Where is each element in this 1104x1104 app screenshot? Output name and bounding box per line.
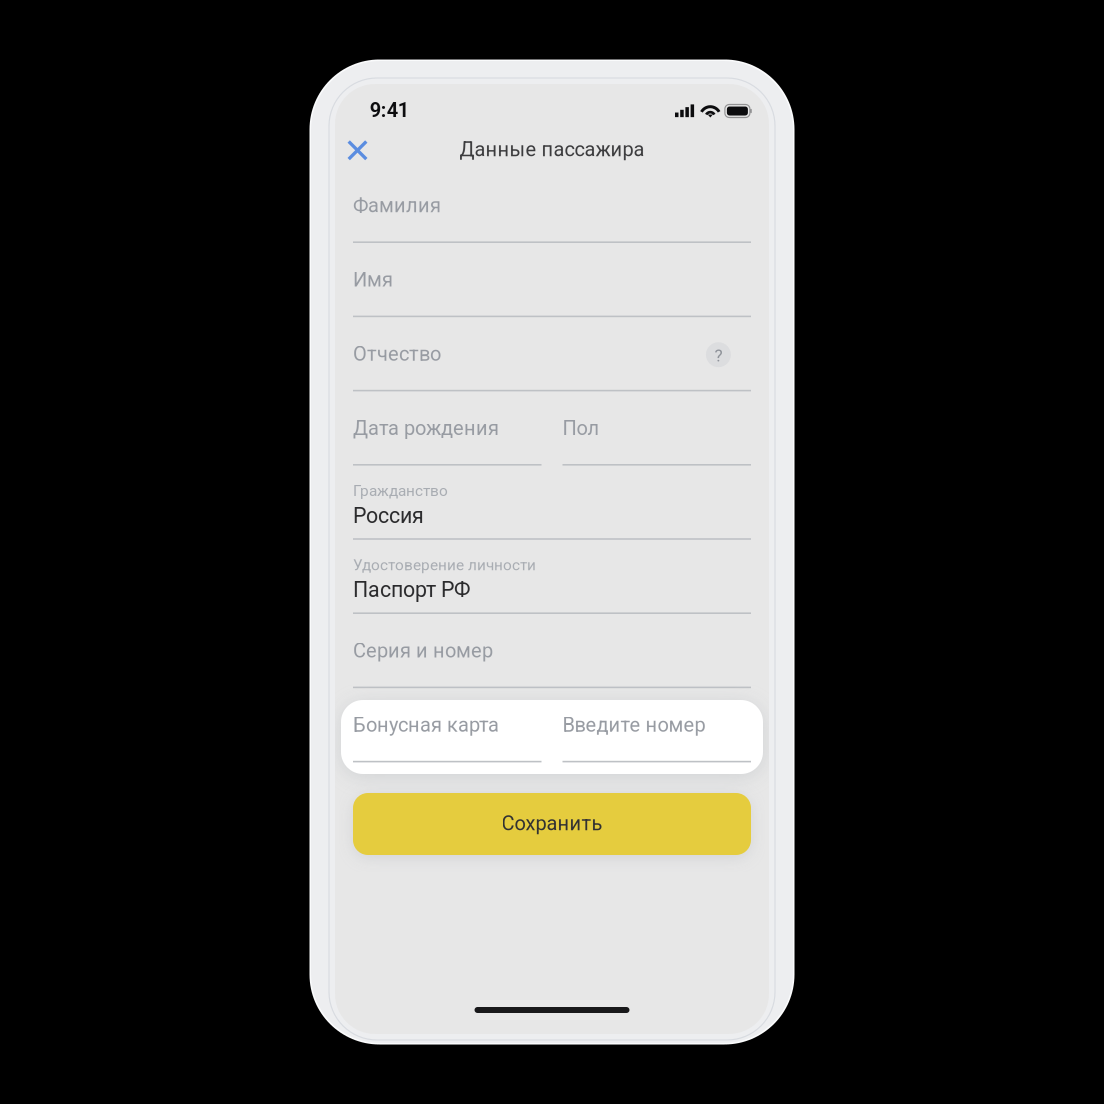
button[interactable]: What is a patronymic xyxy=(699,336,737,374)
button[interactable]: Фамилия xyxy=(353,169,751,243)
staticText: Бонусная карта xyxy=(353,713,499,737)
button[interactable]: Пол xyxy=(562,391,751,466)
staticText: 9:41 xyxy=(370,98,409,122)
button[interactable]: Дата рождения xyxy=(353,391,541,466)
staticText: Гражданство xyxy=(353,482,448,500)
button[interactable]: Сохранить xyxy=(353,793,751,855)
button[interactable]: Close xyxy=(334,127,380,173)
staticText: Серия и номер xyxy=(353,639,493,662)
staticText: Удостоверение личности xyxy=(353,556,536,574)
button[interactable]: Гражданство xyxy=(353,466,751,540)
staticText: Имя xyxy=(353,268,393,291)
staticText: Пол xyxy=(562,416,599,440)
button[interactable]: Бонусная карта xyxy=(353,688,541,762)
staticText: Фамилия xyxy=(353,194,441,217)
button[interactable]: Отчество xyxy=(353,317,751,391)
button[interactable]: Введите номер xyxy=(562,688,751,762)
staticText: Дата рождения xyxy=(353,416,499,440)
staticText: Данные пассажира xyxy=(459,138,644,161)
staticText: Отчество xyxy=(353,342,441,366)
staticText: Паспорт РФ xyxy=(353,577,470,602)
staticText: Сохранить xyxy=(501,812,602,835)
staticText: ? xyxy=(714,345,722,366)
button[interactable]: Имя xyxy=(353,243,751,317)
staticText: Россия xyxy=(353,503,424,528)
button[interactable]: Серия и номер xyxy=(353,614,751,688)
staticText: Введите номер xyxy=(562,713,705,737)
button[interactable]: Удостоверение личности xyxy=(353,540,751,614)
